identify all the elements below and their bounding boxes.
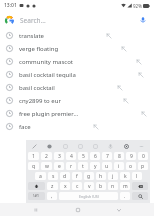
- button[interactable]: m: [120, 182, 130, 190]
- button[interactable]: Handwriting: [30, 142, 39, 151]
- button[interactable]: Insert suggestion: [115, 83, 125, 93]
- button[interactable]: Back: [112, 203, 125, 216]
- staticText: a: [39, 173, 42, 180]
- staticText: p: [141, 163, 145, 170]
- button[interactable]: w: [41, 162, 52, 170]
- button[interactable]: 3: [54, 152, 64, 160]
- button[interactable]: a: [35, 172, 46, 180]
- button[interactable]: 9: [126, 152, 136, 160]
- button[interactable]: cny2899 to eur: [0, 94, 154, 107]
- button[interactable]: Recents: [29, 203, 42, 216]
- button[interactable]: f: [72, 172, 82, 180]
- button[interactable]: s: [48, 172, 58, 180]
- button[interactable]: basil cocktail: [0, 81, 154, 94]
- staticText: face: [19, 123, 31, 131]
- staticText: c: [76, 183, 79, 190]
- button[interactable]: ,: [47, 192, 57, 200]
- staticText: 7: [106, 153, 109, 160]
- staticText: basil cocktail: [19, 84, 55, 92]
- button[interactable]: Translate: [91, 142, 100, 151]
- button[interactable]: h: [96, 172, 106, 180]
- button[interactable]: q: [28, 162, 39, 170]
- staticText: ,: [51, 193, 53, 200]
- button[interactable]: 5: [78, 152, 88, 160]
- staticText: j: [112, 173, 114, 180]
- staticText: 92%: [133, 3, 142, 9]
- button[interactable]: !#1: [28, 192, 45, 200]
- button[interactable]: n: [108, 182, 118, 190]
- button[interactable]: free plugin premiere trans footage: [0, 107, 154, 120]
- button[interactable]: j: [108, 172, 118, 180]
- button[interactable]: e: [54, 162, 64, 170]
- button[interactable]: 2: [41, 152, 52, 160]
- button[interactable]: 8: [114, 152, 124, 160]
- staticText: community mascot: [19, 58, 74, 66]
- button[interactable]: z: [47, 182, 58, 190]
- button[interactable]: basil cocktail tequila: [0, 68, 154, 81]
- button[interactable]: b: [96, 182, 106, 190]
- button[interactable]: Insert suggestion: [91, 122, 101, 132]
- button[interactable]: community mascot: [0, 55, 154, 68]
- staticText: g: [87, 173, 91, 180]
- button[interactable]: 0: [138, 152, 148, 160]
- button[interactable]: Shift: [28, 182, 45, 190]
- button[interactable]: y: [90, 162, 100, 170]
- button[interactable]: l: [132, 172, 142, 180]
- button[interactable]: Clipboard: [76, 142, 85, 151]
- staticText: verge floating: [19, 45, 59, 53]
- button[interactable]: c: [72, 182, 82, 190]
- staticText: 3: [58, 153, 61, 160]
- button[interactable]: k: [120, 172, 130, 180]
- button[interactable]: i: [114, 162, 124, 170]
- button[interactable]: Settings: [122, 142, 131, 151]
- staticText: 9: [130, 153, 133, 160]
- button[interactable]: 1: [28, 152, 39, 160]
- button[interactable]: Home: [71, 203, 84, 216]
- button[interactable]: Insert suggestion: [119, 44, 129, 54]
- staticText: English (US): [79, 194, 99, 199]
- button[interactable]: translate: [0, 29, 154, 42]
- button[interactable]: 6: [90, 152, 100, 160]
- staticText: 5: [82, 153, 85, 160]
- button[interactable]: r: [66, 162, 76, 170]
- button[interactable]: v: [84, 182, 94, 190]
- button[interactable]: verge floating: [0, 42, 154, 55]
- button[interactable]: Google: [0, 11, 154, 29]
- button[interactable]: Voice input: [106, 142, 115, 151]
- staticText: b: [99, 183, 103, 190]
- button[interactable]: x: [60, 182, 70, 190]
- staticText: v: [88, 183, 91, 190]
- button[interactable]: Insert suggestion: [139, 109, 149, 119]
- button[interactable]: Search: [132, 192, 148, 200]
- button[interactable]: Insert suggestion: [134, 57, 144, 67]
- button[interactable]: Voice search: [137, 14, 149, 26]
- button[interactable]: 4: [66, 152, 76, 160]
- other: Google: [5, 16, 14, 25]
- button[interactable]: GIF: [61, 142, 70, 151]
- staticText: e: [58, 163, 61, 170]
- staticText: w: [45, 163, 49, 170]
- button[interactable]: .: [120, 192, 130, 200]
- button[interactable]: t: [78, 162, 88, 170]
- button[interactable]: p: [138, 162, 148, 170]
- button[interactable]: o: [126, 162, 136, 170]
- staticText: u: [105, 163, 109, 170]
- staticText: n: [111, 183, 115, 190]
- button[interactable]: 7: [102, 152, 112, 160]
- button[interactable]: Insert suggestion: [136, 70, 146, 80]
- staticText: f: [76, 173, 78, 180]
- button[interactable]: Backspace: [132, 182, 148, 190]
- staticText: l: [136, 173, 138, 180]
- button[interactable]: Insert suggestion: [121, 96, 131, 106]
- staticText: q: [32, 163, 36, 170]
- button[interactable]: Insert suggestion: [104, 31, 114, 41]
- button[interactable]: English (US): [59, 192, 118, 200]
- button[interactable]: u: [102, 162, 112, 170]
- button[interactable]: g: [84, 172, 94, 180]
- button[interactable]: Stickers: [45, 142, 54, 151]
- button[interactable]: face: [0, 120, 154, 133]
- staticText: s: [52, 173, 55, 180]
- button[interactable]: More: [137, 142, 146, 151]
- button[interactable]: d: [60, 172, 70, 180]
- staticText: y: [94, 163, 97, 170]
